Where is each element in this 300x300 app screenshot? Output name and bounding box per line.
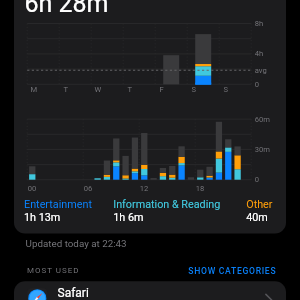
button[interactable]: Screen Time summary [0,0,300,300]
